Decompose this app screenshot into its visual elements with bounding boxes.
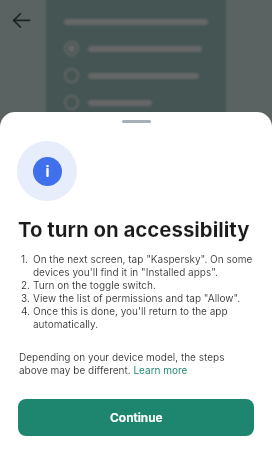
staticText: On the next screen, tap "Kaspersky". On … <box>33 253 254 279</box>
staticText: View the list of permissions and tap "Al… <box>33 292 241 305</box>
staticText: To turn on accessibility <box>18 217 250 242</box>
staticText: Continue <box>110 410 163 425</box>
staticText: Turn on the toggle switch. <box>33 279 156 292</box>
staticText: 1. <box>21 253 33 266</box>
staticText: Depending on your device model, the step… <box>19 351 231 377</box>
staticText: 4. <box>21 305 33 318</box>
staticText: 3. <box>21 292 33 305</box>
button[interactable]: Continue <box>18 399 254 436</box>
button[interactable]: Back <box>6 6 38 38</box>
staticText: 2. <box>21 279 33 292</box>
staticText: Once this is done, you'll return to the … <box>33 305 254 331</box>
